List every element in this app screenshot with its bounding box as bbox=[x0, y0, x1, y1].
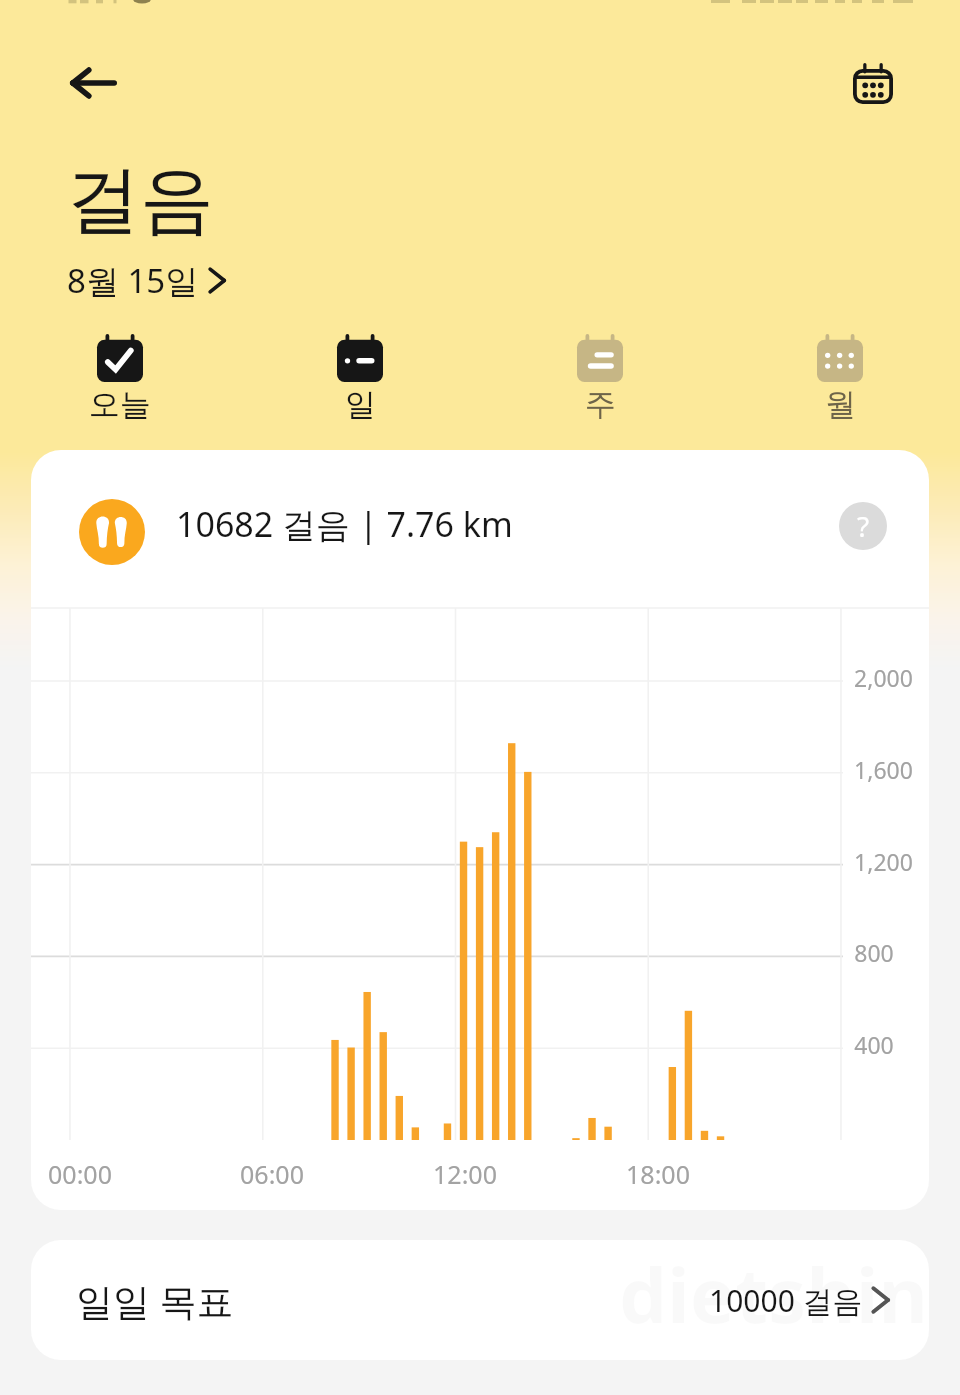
staticText: 2,000 bbox=[854, 662, 913, 693]
staticText: 18:00 bbox=[626, 1157, 690, 1191]
button[interactable]: 오늘 bbox=[0, 330, 240, 430]
staticText: 일일 목표 bbox=[76, 1275, 234, 1326]
staticText: 1,600 bbox=[854, 754, 913, 785]
staticText: 1,200 bbox=[854, 846, 913, 877]
staticText: 월 bbox=[825, 385, 856, 424]
button[interactable]: 일 bbox=[240, 330, 480, 430]
staticText: ? bbox=[857, 507, 870, 545]
staticText: dietshin.com bbox=[619, 1242, 929, 1346]
button[interactable]: 10682 걸음 | 7.76 km bbox=[31, 450, 929, 598]
button[interactable]: dietshin.com bbox=[31, 1240, 929, 1360]
staticText: 일 bbox=[345, 385, 376, 424]
button[interactable]: 8월 15일 bbox=[67, 255, 231, 305]
staticText: 걸음 bbox=[66, 154, 214, 247]
staticText: 400 bbox=[854, 1029, 894, 1060]
staticText: 00:00 bbox=[48, 1157, 112, 1191]
staticText: 800 bbox=[854, 937, 894, 968]
staticText: 12:00 bbox=[433, 1157, 497, 1191]
staticText: 주 bbox=[585, 385, 616, 424]
button[interactable]: Help bbox=[839, 502, 887, 550]
button[interactable]: Calendar bbox=[834, 44, 912, 122]
staticText: 8월 15일 bbox=[67, 258, 199, 303]
staticText: 06:00 bbox=[240, 1157, 304, 1191]
staticText: 오늘 bbox=[89, 385, 151, 424]
staticText: 10000 걸음 bbox=[709, 1280, 863, 1321]
button[interactable]: 주 bbox=[480, 330, 720, 430]
button[interactable]: 월 bbox=[720, 330, 960, 430]
staticText: 10682 걸음 | 7.76 km bbox=[176, 501, 513, 547]
button[interactable]: Back bbox=[52, 42, 134, 124]
